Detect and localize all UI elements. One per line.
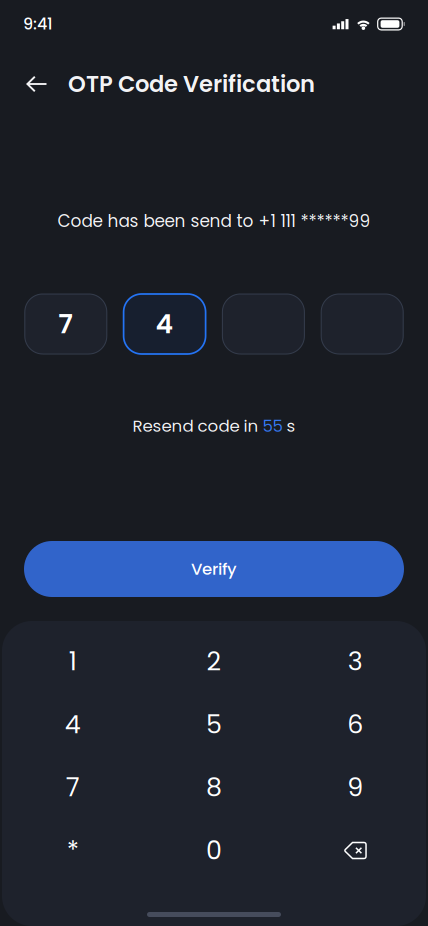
button[interactable]: 9 [285,756,426,819]
staticText: 4 [65,707,81,742]
button[interactable]: 0 [143,819,285,882]
button[interactable]: 8 [143,756,285,819]
button[interactable]: * [2,819,143,882]
staticText: 9:41 [23,13,53,35]
staticText: 2 [206,644,221,679]
staticText: OTP Code Verification [68,68,315,100]
staticText: 3 [348,644,363,679]
button[interactable]: 7 [2,756,143,819]
staticText: 7 [58,305,73,343]
button[interactable]: Digit 1 [25,294,107,354]
button[interactable]: 3 [285,630,426,693]
staticText: * [67,833,79,868]
staticText: 4 [156,305,174,343]
staticText: 55 [262,414,282,438]
staticText: Code has been send to +1 111 ******99 [57,209,370,233]
button[interactable]: Back [15,62,59,106]
button[interactable]: 6 [285,693,426,756]
staticText: Resend code in [132,414,262,438]
button[interactable]: 2 [143,630,285,693]
button[interactable]: Digit 2 [124,294,206,354]
staticText: 1 [69,644,77,679]
staticText: 5 [206,707,222,742]
button[interactable]: 4 [2,693,143,756]
button[interactable]: 1 [2,630,143,693]
button[interactable]: Delete [285,819,426,882]
staticText: 8 [206,770,222,805]
button[interactable]: Digit 3, empty [222,294,304,354]
staticText: 7 [66,770,80,805]
staticText: Verify [191,557,237,580]
button[interactable]: 5 [143,693,285,756]
button[interactable]: Verify [24,541,404,597]
staticText: s [282,414,295,438]
button[interactable]: Resend code in [132,415,295,437]
staticText: 9 [347,770,363,805]
staticText: 0 [206,833,222,868]
button[interactable]: Digit 4, empty [321,294,403,354]
staticText: 6 [347,707,363,742]
